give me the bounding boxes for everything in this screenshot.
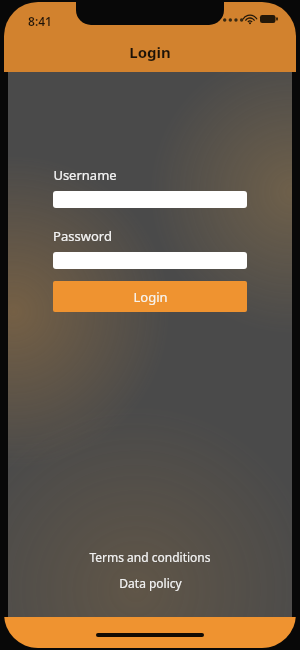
button[interactable] [53,252,247,269]
button[interactable]: Login [53,281,247,312]
staticText: Username [53,166,117,184]
staticText: Login [133,288,168,306]
staticText: Password [53,227,112,245]
staticText: Login [129,42,171,62]
staticText: Terms and conditions [89,549,211,565]
button[interactable]: Data policy [111,573,190,593]
staticText: 8:41 [28,13,52,29]
button[interactable] [53,191,247,208]
button[interactable]: Terms and conditions [81,547,219,567]
staticText: Data policy [119,575,182,591]
